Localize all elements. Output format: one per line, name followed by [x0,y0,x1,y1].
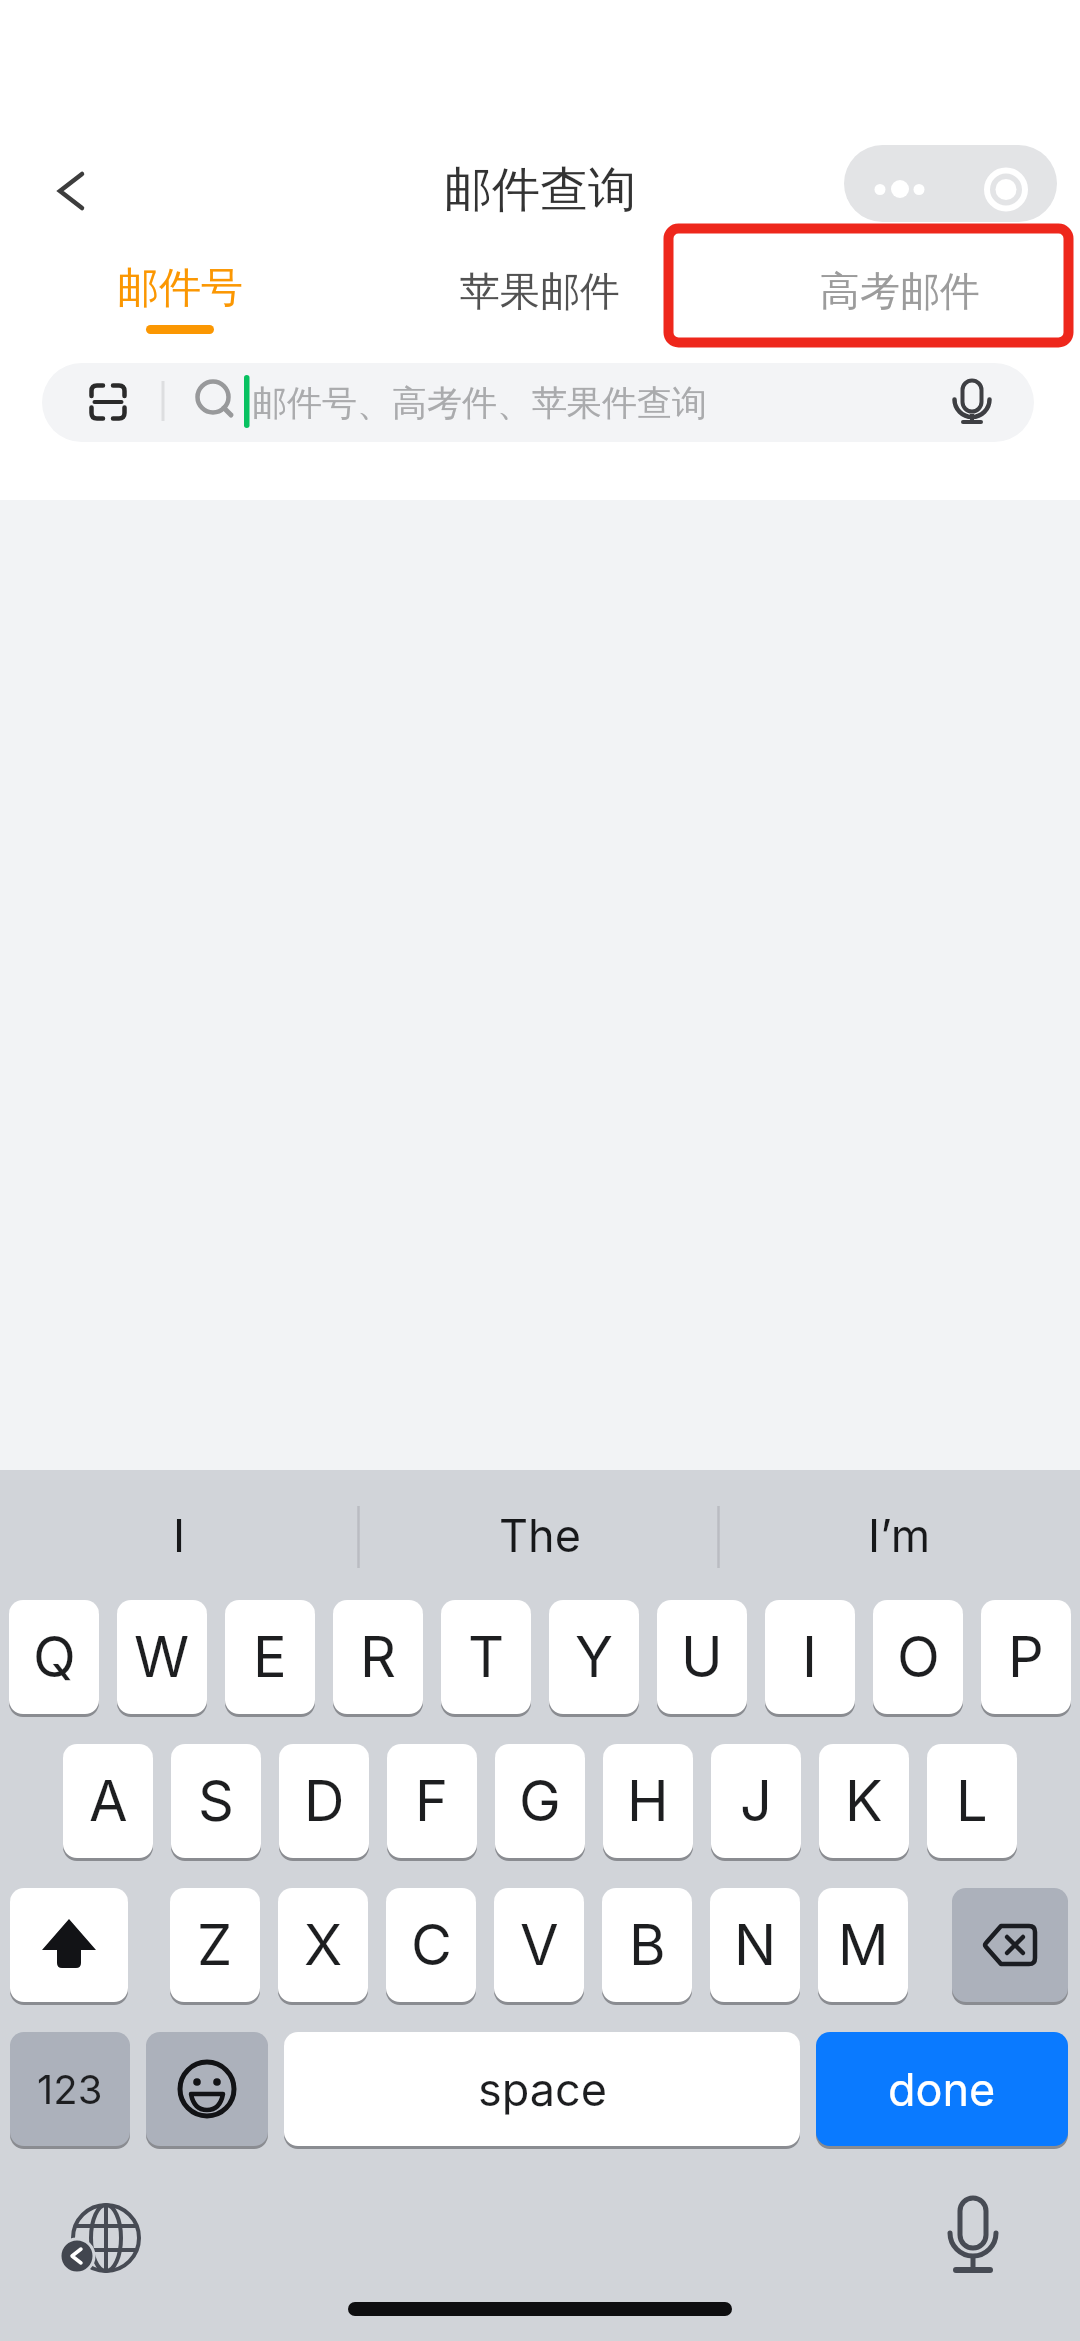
staticText: M [838,1911,889,1979]
button[interactable] [40,155,100,225]
staticText: T [468,1623,505,1691]
staticText: 邮件查询 [444,160,636,220]
staticText: S [198,1767,234,1835]
button[interactable] [844,145,950,222]
button[interactable]: B [602,1888,692,2002]
staticText: 邮件号、高考件、苹果件查询 [252,381,707,425]
staticText: space [478,2062,607,2116]
button[interactable]: The [361,1500,718,1570]
button[interactable]: C [386,1888,476,2002]
button[interactable]: I [765,1600,855,1714]
staticText: 邮件号 [117,262,243,315]
staticText: Y [575,1623,614,1691]
button[interactable] [952,1888,1068,2002]
button[interactable]: A [63,1744,153,1858]
button[interactable]: F [387,1744,477,1858]
button[interactable]: done [816,2032,1068,2146]
button[interactable]: N [710,1888,800,2002]
button[interactable]: Z [170,1888,260,2002]
staticText: K [845,1767,883,1835]
button[interactable] [60,2192,152,2284]
button[interactable]: W [117,1600,207,1714]
button[interactable]: 邮件号 [110,262,250,348]
staticText: D [304,1767,345,1835]
button[interactable]: K [819,1744,909,1858]
staticText: U [681,1623,723,1691]
button[interactable]: 123 [10,2032,130,2146]
button[interactable]: U [657,1600,747,1714]
button[interactable]: M [818,1888,908,2002]
staticText: 高考邮件 [820,266,980,316]
button[interactable]: X [278,1888,368,2002]
button[interactable]: E [225,1600,315,1714]
staticText: B [629,1911,666,1979]
staticText: The [499,1508,581,1562]
staticText: W [134,1623,190,1691]
staticText: J [740,1767,772,1835]
staticText: Z [197,1911,233,1979]
staticText: V [520,1911,559,1979]
button[interactable]: O [873,1600,963,1714]
staticText: I’m [868,1508,931,1562]
button[interactable]: L [927,1744,1017,1858]
staticText: F [415,1767,449,1835]
staticText: P [1008,1623,1044,1691]
button[interactable]: 苹果邮件 [455,266,625,326]
staticText: R [360,1623,397,1691]
button[interactable]: S [171,1744,261,1858]
button[interactable]: T [441,1600,531,1714]
button[interactable]: Q [9,1600,99,1714]
button[interactable]: space [284,2032,800,2146]
button[interactable]: V [494,1888,584,2002]
button[interactable] [945,2194,1001,2280]
staticText: I [173,1508,186,1562]
button[interactable]: J [711,1744,801,1858]
button[interactable]: 高考邮件 [815,266,985,326]
button[interactable] [146,2032,268,2146]
button[interactable]: Y [549,1600,639,1714]
staticText: O [897,1623,940,1691]
button[interactable]: P [981,1600,1071,1714]
button[interactable]: I [0,1500,359,1570]
button[interactable]: H [603,1744,693,1858]
staticText: E [253,1623,287,1691]
staticText: G [519,1767,561,1835]
button[interactable]: I’m [720,1500,1079,1570]
staticText: H [627,1767,669,1835]
staticText: 123 [37,2065,103,2113]
button[interactable]: 邮件号、高考件、苹果件查询 [42,363,1034,442]
staticText: C [411,1911,452,1979]
staticText: X [304,1911,343,1979]
staticText: I [802,1623,818,1691]
staticText: N [734,1911,777,1979]
staticText: A [89,1767,128,1835]
staticText: Q [33,1623,76,1691]
staticText: L [956,1767,988,1835]
button[interactable]: D [279,1744,369,1858]
staticText: done [888,2062,996,2116]
staticText: 苹果邮件 [460,266,620,316]
button[interactable] [950,145,1057,222]
button[interactable]: R [333,1600,423,1714]
button[interactable] [10,1888,128,2002]
button[interactable]: G [495,1744,585,1858]
